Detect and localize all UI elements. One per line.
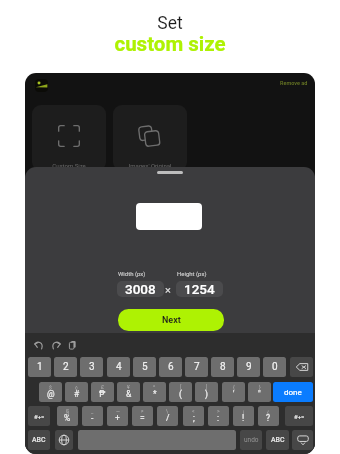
button[interactable]: 5 — [133, 357, 156, 377]
staticText: ^ — [153, 384, 156, 390]
button[interactable]: ¥ — [117, 382, 140, 402]
staticText: { — [233, 384, 235, 390]
button[interactable]: ^ — [143, 382, 166, 402]
staticText: } — [259, 384, 261, 390]
staticText: ] — [206, 384, 208, 390]
staticText: 6 — [168, 361, 174, 373]
staticText: ¿ — [267, 408, 270, 414]
button[interactable]: { — [222, 382, 245, 402]
button[interactable]: } — [248, 382, 271, 402]
staticText: ? — [266, 413, 271, 423]
button[interactable]: Change keyboard — [55, 430, 73, 450]
staticText: " — [258, 389, 261, 399]
staticText: #+= — [34, 413, 45, 420]
staticText: @ — [47, 389, 55, 399]
staticText: Remove ad — [280, 80, 308, 86]
staticText: #+= — [294, 413, 305, 420]
staticText: Width (px) — [118, 270, 146, 277]
staticText: — — [116, 408, 120, 414]
button[interactable]: 8 — [211, 357, 234, 377]
button[interactable]: undo — [240, 430, 262, 450]
button[interactable]: Hide keyboard — [292, 430, 313, 450]
staticText: 9 — [246, 361, 252, 373]
button[interactable]: 3008 — [117, 281, 164, 297]
button[interactable]: £ — [91, 382, 114, 402]
button[interactable]: Redo — [50, 339, 62, 351]
staticText: ABC — [32, 436, 46, 444]
button[interactable]: #+= — [285, 406, 313, 426]
button[interactable]: ABC — [266, 430, 289, 450]
staticText: : — [217, 413, 220, 423]
staticText: 3 — [89, 361, 95, 373]
staticText: ( — [179, 389, 182, 399]
button[interactable]: ¢ — [65, 382, 88, 402]
button[interactable]: ABC — [28, 430, 50, 450]
button[interactable]: Images' Original — [113, 105, 187, 171]
staticText: & — [126, 389, 132, 399]
button[interactable]: 0 — [263, 357, 286, 377]
button[interactable]: < — [183, 406, 204, 426]
button[interactable]: Remove ad — [278, 80, 310, 86]
button[interactable]: Paste — [67, 339, 79, 351]
button[interactable]: Undo — [33, 339, 45, 351]
staticText: ; — [193, 413, 195, 423]
button[interactable]: _ — [82, 406, 103, 426]
button[interactable]: #+= — [28, 406, 50, 426]
staticText: 8 — [220, 361, 226, 373]
staticText: × — [165, 284, 171, 297]
button[interactable]: 9 — [237, 357, 260, 377]
button[interactable]: 1254 — [176, 281, 223, 297]
button[interactable]: > — [208, 406, 229, 426]
staticText: Next — [162, 315, 181, 326]
staticText: ' — [233, 389, 235, 399]
button[interactable]: ¿ — [258, 406, 279, 426]
staticText: ¡ — [243, 408, 245, 414]
button[interactable]: [ — [169, 382, 192, 402]
button[interactable]: \ — [157, 406, 178, 426]
button[interactable]: 7 — [185, 357, 208, 377]
staticText: 1254 — [184, 281, 215, 297]
button[interactable]: 2 — [54, 357, 77, 377]
staticText: _ — [91, 408, 94, 414]
button[interactable]: 1 — [28, 357, 51, 377]
staticText: - — [91, 413, 94, 423]
button[interactable]: 3 — [80, 357, 103, 377]
staticText: ≠ — [141, 408, 144, 414]
staticText: 7 — [194, 361, 200, 373]
button[interactable]: — — [107, 406, 128, 426]
button[interactable]: ≠ — [132, 406, 153, 426]
button[interactable]: 6 — [159, 357, 182, 377]
staticText: < — [192, 408, 195, 414]
staticText: £ — [101, 384, 104, 390]
staticText: \ — [166, 408, 169, 414]
staticText: / — [166, 413, 170, 423]
staticText: custom size — [0, 32, 340, 56]
staticText: ) — [205, 389, 208, 399]
staticText: Images' Original — [113, 162, 187, 169]
button[interactable]: Next — [118, 309, 224, 331]
staticText: Set — [0, 13, 340, 34]
button[interactable]: Custom Size — [32, 105, 106, 171]
staticText: 3008 — [125, 281, 156, 297]
staticText: ¢ — [75, 384, 78, 390]
button[interactable]: $ — [39, 382, 62, 402]
staticText: = — [140, 413, 145, 423]
button[interactable]: done — [273, 382, 313, 402]
button[interactable]: § — [57, 406, 78, 426]
button[interactable]: ¡ — [233, 406, 254, 426]
staticText: 5 — [142, 361, 148, 373]
staticText: done — [284, 388, 302, 397]
staticText: ₱ — [99, 389, 106, 399]
button[interactable]: App icon — [35, 79, 48, 92]
staticText: 0 — [272, 361, 278, 373]
staticText: [ — [180, 384, 182, 390]
button[interactable]: ] — [195, 382, 218, 402]
button[interactable]: 4 — [107, 357, 130, 377]
button[interactable]: Backspace — [290, 357, 313, 377]
staticText: * — [153, 389, 157, 399]
staticText: % — [64, 413, 71, 423]
staticText: 1 — [37, 361, 43, 373]
staticText: > — [217, 408, 220, 414]
staticText: + — [115, 413, 120, 423]
